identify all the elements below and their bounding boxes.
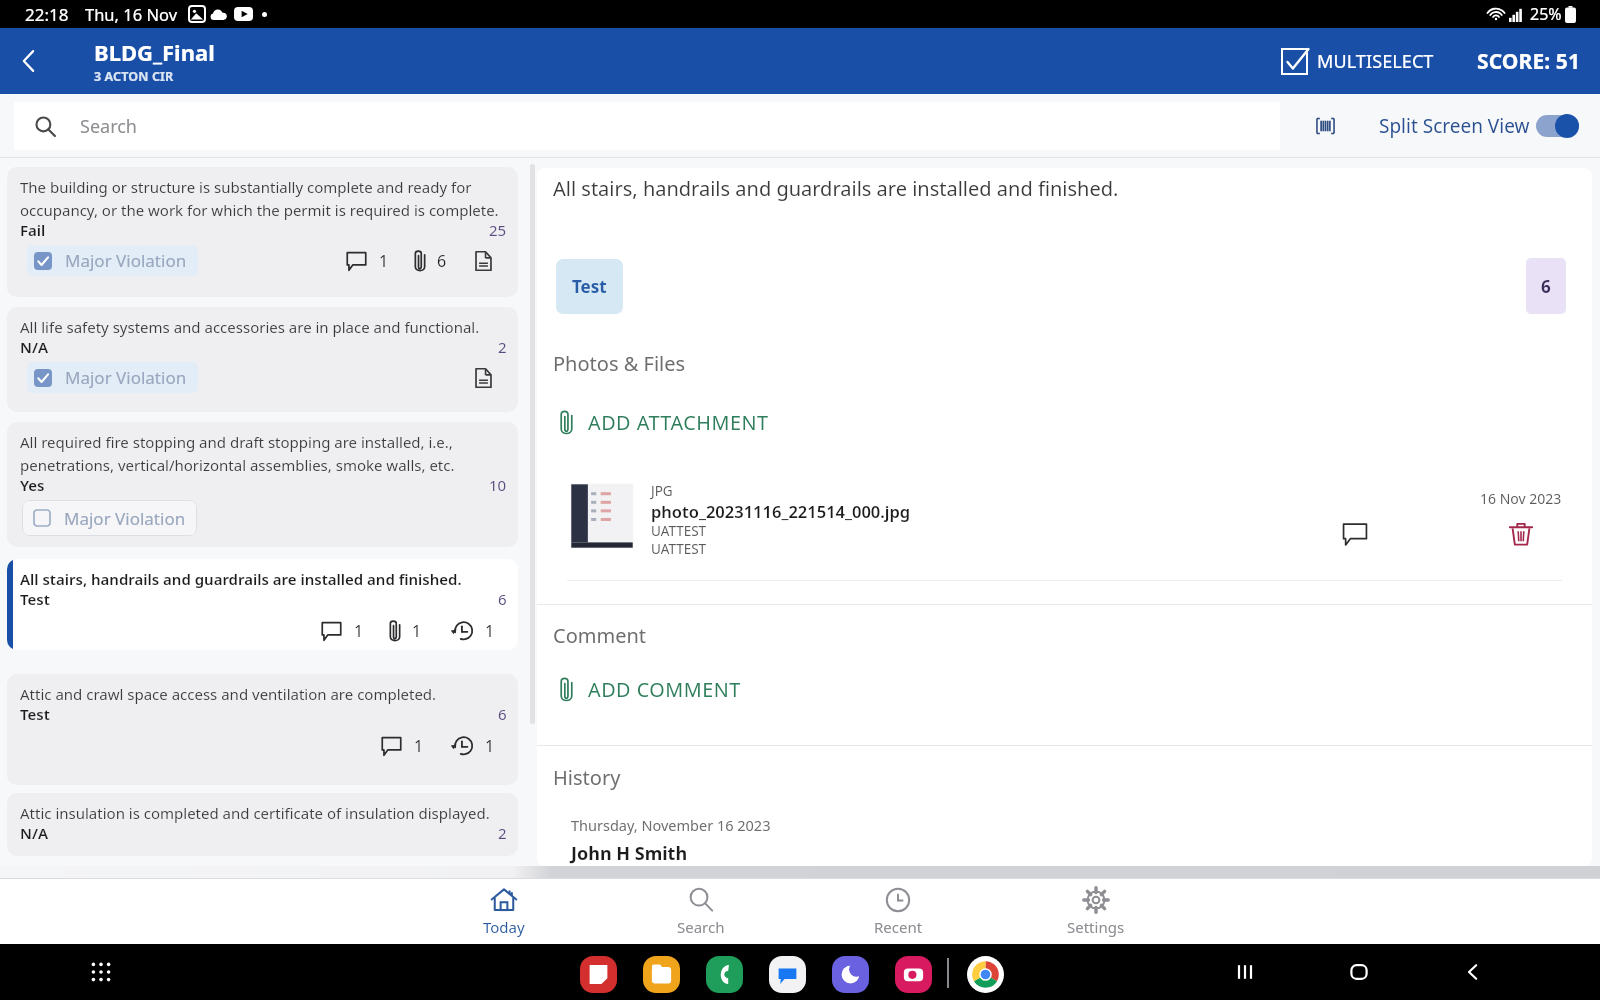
staticText: 6 bbox=[498, 589, 507, 609]
staticText: Thu, 16 Nov bbox=[85, 3, 178, 25]
staticText: SCORE: 51 bbox=[1477, 47, 1581, 76]
staticText: UATTEST bbox=[651, 522, 707, 540]
button[interactable]: Document bbox=[475, 367, 492, 389]
staticText: All required fire stopping and draft sto… bbox=[20, 432, 507, 475]
staticText: 25 bbox=[489, 220, 507, 240]
staticText: Attic and crawl space access and ventila… bbox=[20, 684, 437, 704]
staticText: Settings bbox=[1067, 917, 1125, 937]
staticText: UATTEST bbox=[651, 540, 707, 558]
button[interactable]: 1 bbox=[450, 735, 495, 757]
staticText: Major Violation bbox=[64, 507, 186, 530]
staticText: 1 bbox=[414, 735, 424, 757]
staticText: 16 Nov 2023 bbox=[1480, 489, 1562, 508]
button[interactable]: Settings bbox=[997, 878, 1195, 944]
button[interactable]: Comment bbox=[1342, 521, 1368, 547]
staticText: N/A bbox=[20, 337, 48, 357]
button[interactable]: Split Screen View bbox=[1379, 113, 1579, 139]
staticText: 1 bbox=[485, 735, 495, 757]
staticText: Major Violation bbox=[65, 366, 187, 389]
button[interactable]: App bbox=[769, 956, 806, 993]
staticText: Photos & Files bbox=[553, 350, 686, 377]
staticText: The building or structure is substantial… bbox=[20, 177, 507, 220]
button[interactable]: App bbox=[895, 956, 932, 993]
button[interactable]: Scan barcode bbox=[1303, 104, 1347, 148]
staticText: All stairs, handrails and guardrails are… bbox=[553, 175, 1119, 202]
button[interactable]: Back bbox=[1458, 957, 1488, 987]
button[interactable]: App bbox=[706, 956, 743, 993]
button[interactable]: App bbox=[832, 956, 869, 993]
button[interactable]: Chrome bbox=[967, 956, 1004, 993]
button[interactable]: Search bbox=[602, 878, 799, 944]
button[interactable]: App bbox=[580, 956, 617, 993]
staticText: Comment bbox=[553, 622, 646, 649]
staticText: History bbox=[553, 764, 621, 791]
staticText: All life safety systems and accessories … bbox=[20, 317, 480, 337]
staticText: Search bbox=[677, 917, 725, 937]
button[interactable]: Attic and crawl space access and ventila… bbox=[7, 674, 518, 785]
button[interactable]: Recent bbox=[799, 878, 997, 944]
button[interactable]: Major Violation bbox=[22, 500, 197, 536]
staticText: 6 bbox=[437, 250, 447, 272]
staticText: John H Smith bbox=[571, 841, 688, 866]
button[interactable]: SCORE: 51 bbox=[1471, 37, 1587, 86]
staticText: 2 bbox=[498, 337, 507, 357]
staticText: 1 bbox=[379, 250, 389, 272]
button[interactable]: 1 bbox=[450, 620, 495, 642]
button[interactable]: Today bbox=[405, 878, 602, 944]
staticText: 6 bbox=[498, 704, 507, 724]
button[interactable]: Search bbox=[14, 102, 1280, 150]
button[interactable]: 6 bbox=[415, 250, 447, 272]
staticText: Today bbox=[483, 917, 525, 937]
button[interactable]: All life safety systems and accessories … bbox=[7, 307, 518, 412]
button[interactable]: ADD COMMENT bbox=[554, 672, 745, 707]
staticText: ADD COMMENT bbox=[588, 676, 741, 703]
staticText: JPG bbox=[651, 482, 673, 500]
button[interactable]: Document bbox=[475, 250, 492, 272]
button[interactable]: Back bbox=[0, 28, 58, 94]
button[interactable]: 1 bbox=[390, 620, 422, 642]
button[interactable]: 1 bbox=[321, 620, 364, 642]
button[interactable]: All required fire stopping and draft sto… bbox=[7, 422, 518, 547]
staticText: 6 bbox=[1541, 275, 1551, 298]
staticText: MULTISELECT bbox=[1317, 49, 1434, 74]
staticText: Test bbox=[20, 704, 50, 724]
button[interactable]: Home bbox=[1344, 957, 1374, 987]
staticText: 10 bbox=[489, 475, 507, 495]
staticText: Yes bbox=[20, 475, 45, 495]
button[interactable]: Major Violation bbox=[27, 362, 198, 393]
staticText: 1 bbox=[354, 620, 364, 642]
staticText: 3 ACTON CIR bbox=[94, 68, 174, 85]
staticText: 1 bbox=[485, 620, 495, 642]
button[interactable]: ADD ATTACHMENT bbox=[554, 405, 773, 440]
staticText: Thursday, November 16 2023 bbox=[571, 815, 771, 835]
button[interactable]: 1 bbox=[346, 250, 389, 272]
staticText: Test bbox=[20, 589, 50, 609]
staticText: N/A bbox=[20, 823, 48, 843]
staticText: Search bbox=[80, 114, 137, 139]
button[interactable]: MULTISELECT bbox=[1272, 38, 1443, 85]
staticText: Recent bbox=[874, 917, 923, 937]
button[interactable]: Attic insulation is completed and certif… bbox=[7, 793, 518, 856]
staticText: photo_20231116_221514_000.jpg bbox=[651, 500, 911, 522]
staticText: Test bbox=[572, 275, 607, 298]
staticText: 25% bbox=[1530, 3, 1562, 25]
staticText: Fail bbox=[20, 220, 46, 240]
button[interactable]: Delete bbox=[1507, 520, 1535, 548]
staticText: 22:18 bbox=[25, 3, 69, 26]
button[interactable]: The building or structure is substantial… bbox=[7, 167, 518, 297]
button[interactable]: Test bbox=[556, 259, 623, 314]
staticText: BLDG_Final bbox=[94, 37, 215, 67]
button[interactable]: Recents bbox=[1230, 957, 1260, 987]
staticText: 2 bbox=[498, 823, 507, 843]
staticText: ADD ATTACHMENT bbox=[588, 409, 769, 436]
staticText: Attic insulation is completed and certif… bbox=[20, 803, 490, 823]
staticText: Split Screen View bbox=[1379, 113, 1530, 139]
staticText: All stairs, handrails and guardrails are… bbox=[20, 569, 462, 589]
staticText: 1 bbox=[412, 620, 422, 642]
button[interactable]: Major Violation bbox=[27, 245, 198, 276]
button[interactable]: All stairs, handrails and guardrails are… bbox=[7, 559, 518, 650]
button[interactable]: 1 bbox=[381, 735, 424, 757]
button[interactable]: App bbox=[643, 956, 680, 993]
staticText: Major Violation bbox=[65, 249, 187, 272]
